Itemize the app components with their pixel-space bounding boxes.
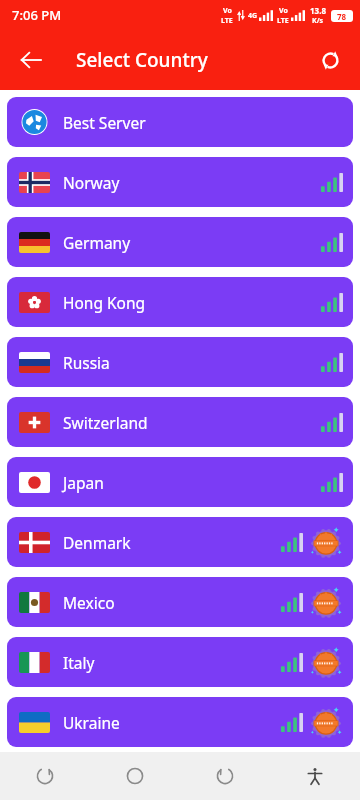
button[interactable]: Switzerland bbox=[7, 397, 353, 447]
button[interactable]: Back bbox=[0, 752, 90, 800]
staticText: Denmark bbox=[63, 532, 131, 553]
staticText: LTE bbox=[221, 16, 233, 26]
staticText: K/s bbox=[312, 16, 324, 26]
button[interactable]: Russia bbox=[7, 337, 353, 387]
button[interactable]: Refresh bbox=[308, 38, 352, 82]
staticText: Russia bbox=[63, 352, 110, 373]
button[interactable]: Recents bbox=[180, 752, 270, 800]
button[interactable]: Japan bbox=[7, 457, 353, 507]
staticText: 78 bbox=[337, 11, 347, 22]
staticText: Hong Kong bbox=[63, 292, 146, 313]
staticText: Japan bbox=[63, 472, 104, 493]
button[interactable]: Best Server bbox=[7, 97, 353, 147]
button[interactable]: Italy bbox=[7, 637, 353, 687]
button[interactable]: Denmark bbox=[7, 517, 353, 567]
staticText: Mexico bbox=[63, 592, 115, 613]
staticText: Switzerland bbox=[63, 412, 148, 433]
button[interactable]: Mexico bbox=[7, 577, 353, 627]
button[interactable]: Hong Kong bbox=[7, 277, 353, 327]
button[interactable]: Ukraine bbox=[7, 697, 353, 747]
staticText: Vo bbox=[223, 6, 232, 16]
staticText: Germany bbox=[63, 232, 131, 253]
staticText: Vo bbox=[279, 6, 288, 16]
staticText: 4G bbox=[248, 11, 258, 21]
staticText: 13.8 bbox=[310, 5, 326, 16]
button[interactable]: Home bbox=[90, 752, 180, 800]
staticText: Norway bbox=[63, 172, 120, 193]
button[interactable]: Germany bbox=[7, 217, 353, 267]
button[interactable]: Norway bbox=[7, 157, 353, 207]
staticText: Ukraine bbox=[63, 712, 120, 733]
staticText: LTE bbox=[277, 16, 289, 26]
staticText: 7:06 PM bbox=[12, 6, 62, 24]
button[interactable]: Accessibility bbox=[270, 752, 360, 800]
staticText: Italy bbox=[63, 652, 95, 673]
staticText: Best Server bbox=[63, 112, 146, 133]
staticText: Select Country bbox=[76, 47, 208, 73]
button[interactable]: Back bbox=[8, 37, 54, 83]
